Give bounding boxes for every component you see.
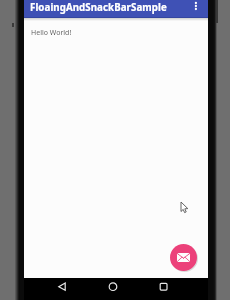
button[interactable] — [170, 244, 197, 271]
button[interactable] — [147, 278, 208, 300]
button[interactable] — [55, 280, 69, 294]
button[interactable] — [86, 278, 147, 300]
button[interactable]: FloaingAndSnackBarSample — [24, 0, 208, 18]
button[interactable] — [24, 278, 86, 300]
staticText: FloaingAndSnackBarSample — [30, 1, 167, 14]
button[interactable] — [189, 0, 203, 14]
staticText: Hello World! — [31, 28, 72, 38]
